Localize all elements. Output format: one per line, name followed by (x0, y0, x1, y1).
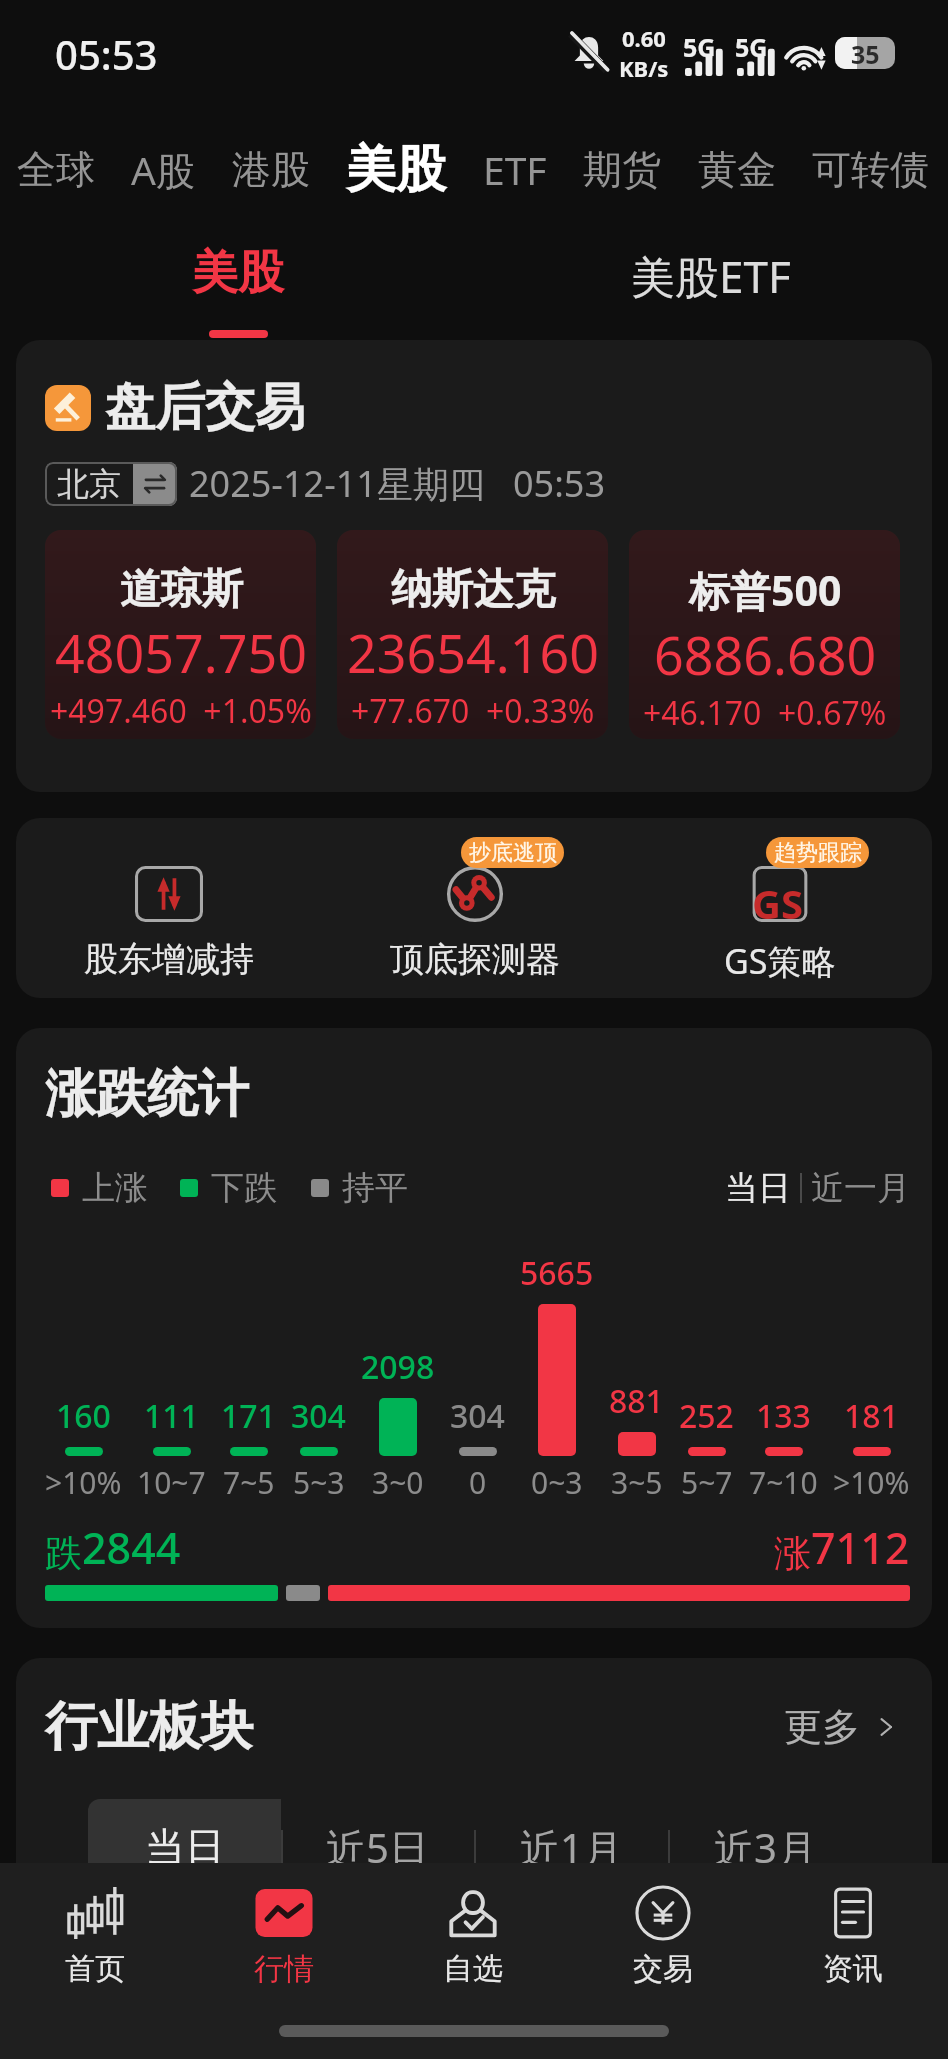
staticText: 可转债 (812, 145, 929, 194)
staticText: 美股 (192, 244, 284, 302)
staticText: 5~7 (681, 1462, 733, 1503)
staticText: 近1月 (520, 1820, 623, 1875)
staticText: 美股ETF (631, 246, 791, 306)
staticText: >10% (833, 1462, 910, 1503)
staticText: 抄底逃顶 (469, 839, 557, 867)
staticText: 5G (683, 30, 716, 64)
button[interactable]: 近一月 (811, 1167, 910, 1209)
staticText: A股 (131, 143, 195, 196)
staticText: 171 (221, 1394, 276, 1438)
button[interactable]: 近5日 (281, 1799, 474, 1895)
staticText: 7~5 (223, 1462, 275, 1503)
staticText: 48057.750 (55, 617, 307, 688)
staticText: 行业板块 (45, 1694, 253, 1760)
button[interactable]: 自选 (378, 1863, 568, 2003)
staticText: 0.60 (622, 23, 666, 53)
staticText: 5~3 (293, 1462, 345, 1503)
button[interactable]: A股 (128, 143, 198, 196)
staticText: 5G (735, 30, 768, 64)
staticText: 近3月 (714, 1820, 817, 1875)
staticText: 期货 (583, 145, 661, 194)
button[interactable]: 美股 (343, 138, 449, 201)
button[interactable]: 期货 (580, 145, 664, 194)
staticText: 5665 (520, 1251, 594, 1295)
staticText: 111 (144, 1394, 199, 1438)
button[interactable]: 北京 (45, 462, 177, 506)
button[interactable]: 标普500 (629, 530, 900, 739)
staticText: 2098 (361, 1345, 435, 1389)
staticText: KB/s (619, 53, 669, 83)
staticText: 181 (844, 1394, 899, 1438)
button[interactable]: 美股ETF (474, 205, 948, 317)
staticText: 近一月 (811, 1167, 910, 1209)
button[interactable]: 近3月 (668, 1799, 862, 1895)
staticText: 05:53 (513, 459, 606, 508)
button[interactable]: 纳斯达克 (337, 530, 608, 739)
staticText: 自选 (443, 1950, 503, 1988)
button[interactable]: ETF (480, 143, 550, 196)
button[interactable]: 近1月 (474, 1799, 668, 1895)
staticText: 趋势跟踪 (774, 839, 862, 867)
staticText: 6886.680 (654, 619, 877, 690)
staticText: 3~5 (611, 1462, 663, 1503)
staticText: 资讯 (823, 1950, 883, 1988)
staticText: 行情 (254, 1950, 314, 1988)
staticText: 黄金 (698, 145, 776, 194)
button[interactable]: GS策略 (627, 818, 932, 998)
staticText: 涨 (774, 1530, 811, 1577)
staticText: +77.670 +0.33% (351, 689, 595, 733)
staticText: 0~3 (531, 1462, 583, 1503)
button[interactable]: 全球 (14, 145, 98, 194)
button[interactable]: 行情 (189, 1863, 378, 2003)
staticText: 7~10 (749, 1462, 818, 1503)
button[interactable]: 交易 (568, 1863, 758, 2003)
staticText: ETF (483, 143, 547, 196)
button[interactable]: 更多 (784, 1703, 900, 1751)
staticText: 0 (469, 1462, 487, 1503)
staticText: 近5日 (326, 1820, 429, 1875)
staticText: 美股 (346, 138, 446, 201)
staticText: 304 (291, 1394, 346, 1438)
staticText: 港股 (232, 145, 310, 194)
staticText: >10% (45, 1462, 122, 1503)
button[interactable]: 首页 (0, 1863, 189, 2003)
staticText: 10~7 (137, 1462, 206, 1503)
staticText: 当日 (725, 1167, 791, 1209)
button[interactable]: 黄金 (695, 145, 779, 194)
staticText: 7112 (811, 1518, 910, 1577)
staticText: 首页 (65, 1950, 125, 1988)
staticText: 交易 (633, 1950, 693, 1988)
staticText: 全球 (17, 145, 95, 194)
staticText: 顶底探测器 (390, 938, 560, 981)
button[interactable]: 当日 (88, 1799, 281, 1895)
button[interactable]: 美股 (0, 205, 474, 317)
button[interactable]: 道琼斯 (45, 530, 316, 739)
staticText: 持平 (342, 1167, 408, 1209)
staticText: +46.170 +0.67% (643, 691, 887, 735)
staticText: 标普500 (689, 562, 842, 618)
staticText: +497.460 +1.05% (50, 689, 312, 733)
staticText: 2844 (82, 1518, 181, 1577)
button[interactable]: 资讯 (758, 1863, 948, 2003)
button[interactable]: 可转债 (809, 145, 932, 194)
staticText: 当日 (145, 1822, 225, 1872)
staticText: 跌 (45, 1530, 82, 1577)
staticText: 北京 (57, 464, 121, 504)
staticText: 盘后交易 (105, 376, 305, 439)
staticText: 2025-12-11星期四 (189, 459, 485, 508)
staticText: 133 (756, 1394, 811, 1438)
staticText: 上涨 (82, 1167, 148, 1209)
staticText: 道琼斯 (120, 564, 243, 616)
button[interactable]: 顶底探测器 (322, 818, 627, 998)
staticText: 3~0 (372, 1462, 424, 1503)
button[interactable]: 当日 (725, 1167, 791, 1209)
staticText: 下跌 (211, 1167, 277, 1209)
staticText: 881 (609, 1379, 664, 1423)
staticText: GS (752, 876, 803, 930)
staticText: 股东增减持 (84, 938, 254, 981)
staticText: GS策略 (724, 938, 836, 984)
staticText: 304 (450, 1394, 505, 1438)
button[interactable]: 港股 (229, 145, 313, 194)
button[interactable]: 股东增减持 (16, 818, 322, 998)
staticText: 160 (56, 1394, 111, 1438)
